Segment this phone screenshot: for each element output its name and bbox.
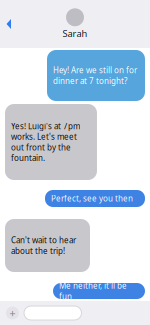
staticText: + [9, 306, 15, 320]
staticText: Sarah [62, 27, 87, 40]
button[interactable]: Back [0, 13, 17, 35]
staticText: Me neither, it'll be fun [59, 280, 127, 302]
staticText: Can't wait to hear about the trip! [11, 235, 76, 256]
staticText: Perfect, see you then [51, 193, 133, 204]
staticText: Hey! Are we still on for dinner at 7 ton… [53, 65, 137, 86]
staticText: Yes! Luigi's at 7pm works. Let's meet ou… [11, 121, 80, 163]
button[interactable]: Add attachment [6, 306, 19, 320]
